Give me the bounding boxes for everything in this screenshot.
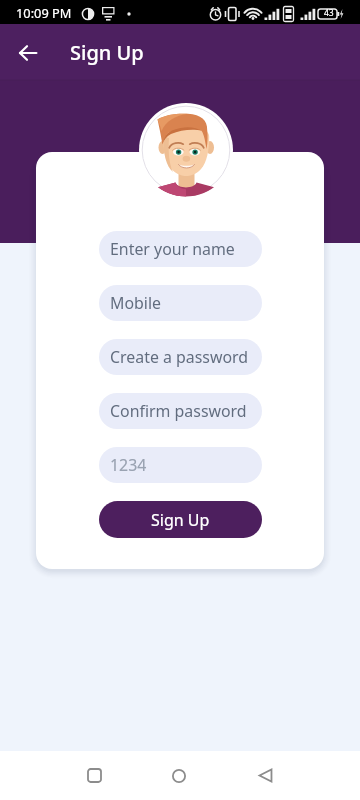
button[interactable]: Enter your name xyxy=(99,231,262,267)
button[interactable]: Back xyxy=(12,37,44,69)
staticText: 1234 xyxy=(110,454,147,476)
button[interactable]: Home xyxy=(155,751,203,800)
staticText: Mobile xyxy=(110,292,161,314)
staticText: Confirm password xyxy=(110,400,247,422)
staticText: Sign Up xyxy=(70,39,144,66)
button[interactable]: Mobile xyxy=(99,285,262,321)
button[interactable]: Create a password xyxy=(99,339,262,375)
button[interactable]: Sign Up xyxy=(99,501,262,538)
staticText: 43 xyxy=(324,7,334,19)
button[interactable]: Recents xyxy=(70,751,118,800)
button[interactable]: 1234 xyxy=(99,447,262,483)
staticText: Sign Up xyxy=(151,509,210,531)
staticText: Enter your name xyxy=(110,238,235,260)
staticText: Create a password xyxy=(110,346,249,368)
staticText: 10:09 PM xyxy=(16,4,72,21)
button[interactable]: Back xyxy=(241,751,289,800)
button[interactable]: Confirm password xyxy=(99,393,262,429)
